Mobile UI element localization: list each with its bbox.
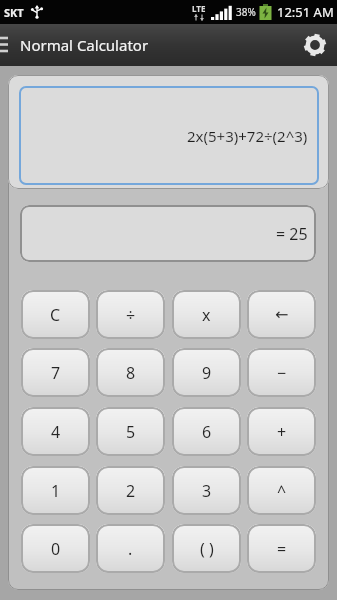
button[interactable]: 2	[96, 466, 165, 515]
button[interactable]: 3	[172, 466, 241, 515]
button[interactable]: ( )	[172, 524, 241, 573]
button[interactable]: 0	[21, 524, 90, 573]
staticText: 2x(5+3)+72÷(2^3)	[187, 126, 308, 146]
staticText: 7	[51, 362, 61, 384]
button[interactable]: 6	[172, 407, 241, 456]
button[interactable]: x	[172, 290, 241, 339]
button[interactable]: 2x(5+3)+72÷(2^3)	[8, 75, 329, 189]
staticText: 0	[51, 538, 61, 560]
button[interactable]: =	[247, 524, 316, 573]
staticText: 38%	[236, 5, 256, 19]
staticText: x	[202, 304, 211, 326]
staticText: = 25	[276, 223, 308, 245]
staticText: C	[50, 304, 61, 326]
button[interactable]: 9	[172, 348, 241, 397]
button[interactable]: 5	[96, 407, 165, 456]
staticText: 3	[202, 480, 212, 502]
staticText: ( )	[200, 538, 214, 560]
staticText: 12:51 AM	[277, 3, 334, 21]
staticText: 2	[126, 480, 136, 502]
staticText: 8	[126, 362, 136, 384]
staticText: LTE	[192, 3, 206, 14]
staticText: =	[277, 538, 287, 560]
button[interactable]: −	[247, 348, 316, 397]
button[interactable]	[304, 34, 326, 56]
staticText: 1	[51, 480, 61, 502]
staticText: ←	[275, 305, 289, 324]
button[interactable]: ^	[247, 466, 316, 515]
staticText: SKT	[4, 5, 24, 20]
button[interactable]: = 25	[20, 205, 316, 262]
button[interactable]: +	[247, 407, 316, 456]
staticText: −	[277, 362, 287, 384]
staticText: Normal Calculator	[20, 35, 149, 55]
button[interactable]: C	[21, 290, 90, 339]
staticText: ^	[277, 480, 287, 502]
button[interactable]: 4	[21, 407, 90, 456]
button[interactable]: 1	[21, 466, 90, 515]
staticText: .	[128, 538, 133, 560]
button[interactable]: ←	[247, 290, 316, 339]
button[interactable]: ÷	[96, 290, 165, 339]
button[interactable]: 8	[96, 348, 165, 397]
staticText: +	[277, 421, 287, 443]
staticText: 5	[126, 421, 136, 443]
staticText: 9	[202, 362, 212, 384]
button[interactable]: 7	[21, 348, 90, 397]
staticText: 6	[202, 421, 212, 443]
staticText: 4	[51, 421, 61, 443]
staticText: ÷	[126, 304, 136, 326]
button[interactable]: .	[96, 524, 165, 573]
